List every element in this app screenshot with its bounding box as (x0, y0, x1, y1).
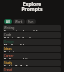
staticText: Work (15, 20, 23, 24)
button[interactable]: Work (13, 19, 25, 24)
staticText: Design (4, 40, 14, 44)
staticText: Code (4, 33, 12, 37)
button[interactable]: Fun (26, 19, 36, 24)
button[interactable]: Ideas (3, 46, 61, 52)
staticText: Ideas (4, 47, 12, 51)
staticText: Fun (28, 20, 34, 24)
button[interactable]: Study (3, 60, 61, 66)
staticText: Writing (4, 26, 15, 30)
button[interactable]: Code (3, 32, 61, 38)
staticText: Refactor this function (4, 37, 35, 38)
staticText: Career (4, 54, 14, 58)
staticText: Summarize a long article (4, 30, 39, 31)
button[interactable]: Career (3, 53, 61, 59)
button[interactable]: Design (3, 39, 61, 45)
staticText: Study (4, 61, 12, 65)
staticText: Travel (4, 68, 13, 72)
button[interactable]: All (4, 19, 12, 24)
button[interactable]: Travel (3, 67, 61, 72)
button[interactable]: Writing (3, 25, 61, 31)
staticText: Moodboard ideas (4, 44, 29, 45)
staticText: Draft a cover letter (4, 58, 31, 59)
staticText: Brainstorm names (4, 51, 31, 52)
staticText: All (6, 20, 10, 24)
staticText: Explain like I'm five (4, 65, 31, 66)
staticText: Explore Prompts (0, 1, 64, 12)
